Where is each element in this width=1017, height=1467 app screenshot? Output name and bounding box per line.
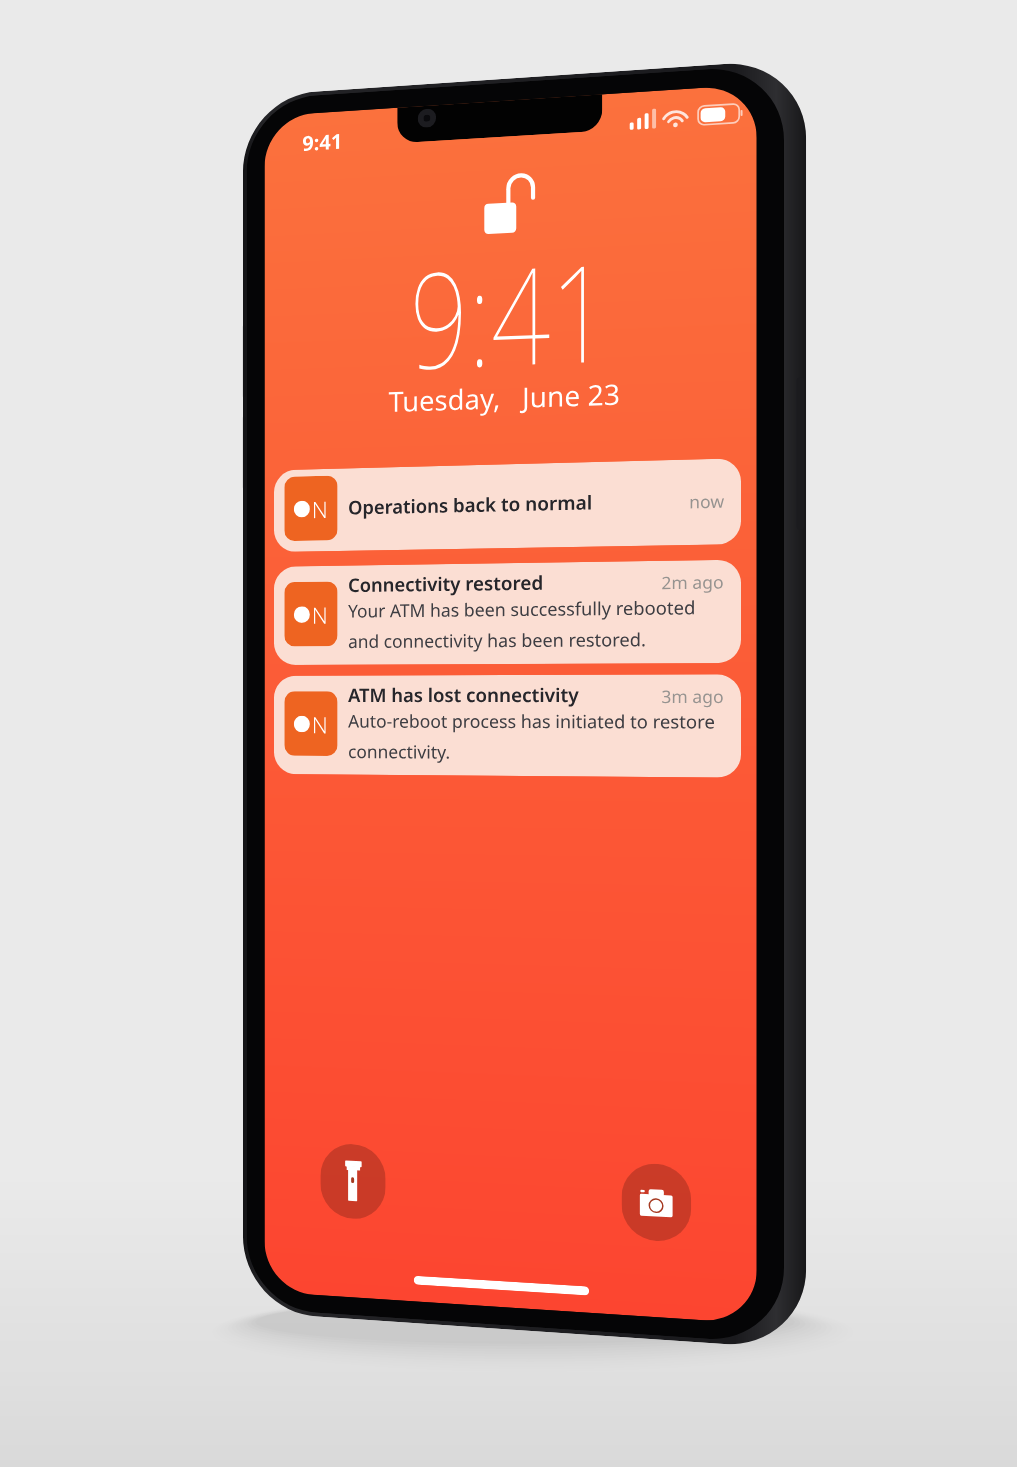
button[interactable]: Camera bbox=[622, 1162, 691, 1243]
staticText: Operations back to normal bbox=[348, 489, 593, 520]
staticText: Auto-reboot process has initiated to res… bbox=[348, 709, 715, 766]
staticText: ATM has lost connectivity bbox=[348, 682, 579, 708]
staticText: N bbox=[312, 709, 328, 739]
staticText: N bbox=[312, 599, 328, 630]
staticText: Connectivity restored bbox=[348, 570, 544, 598]
staticText: 9:41 bbox=[302, 127, 342, 158]
staticText: Tuesday, June 23 bbox=[388, 374, 620, 420]
button[interactable]: N bbox=[274, 674, 741, 778]
staticText: 3m ago bbox=[661, 685, 724, 708]
button[interactable]: Flashlight bbox=[320, 1143, 386, 1221]
staticText: Your ATM has been successfully rebooted … bbox=[348, 595, 696, 654]
staticText: 9:41 bbox=[410, 218, 611, 407]
button[interactable]: N bbox=[274, 560, 741, 665]
staticText: N bbox=[312, 493, 328, 524]
button[interactable]: N bbox=[274, 458, 741, 552]
staticText: now bbox=[689, 489, 724, 513]
staticText: 2m ago bbox=[661, 570, 724, 594]
